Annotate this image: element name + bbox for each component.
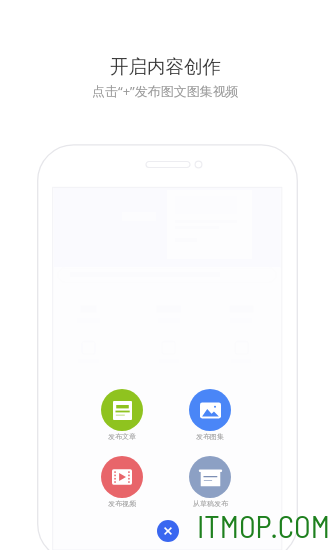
staticText: ITMOP.COM: [197, 507, 330, 544]
staticText: 开启内容创作: [110, 55, 221, 78]
staticText: 发布文章: [108, 432, 136, 441]
staticText: 点击“+”发布图文图集视频: [92, 82, 239, 100]
button[interactable]: Close: [157, 520, 179, 542]
staticText: 发布视频: [108, 499, 136, 508]
button[interactable]: 从草稿发布: [189, 456, 231, 508]
staticText: 发布图集: [196, 432, 224, 441]
button[interactable]: 发布文章: [101, 389, 143, 441]
button[interactable]: 发布图集: [189, 389, 231, 441]
staticText: 从草稿发布: [193, 499, 228, 508]
button[interactable]: 发布视频: [101, 456, 143, 508]
